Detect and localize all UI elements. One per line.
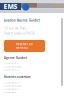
staticText: Ouvert jusqu a 18h30 bbox=[4, 32, 35, 35]
staticText: Lorem ipsum dolor bbox=[4, 92, 17, 93]
staticText: Location Agence Guichet bbox=[4, 19, 40, 22]
staticText: Lorem ipsum dolor sit bbox=[4, 82, 18, 84]
staticText: Lorem ipsum dolor sit bbox=[4, 88, 18, 90]
staticText: Lorem ipsum dolor sit bbox=[4, 62, 18, 64]
staticText: Lorem ipsum dolor sit bbox=[4, 69, 18, 71]
staticText: Lorem ipsum dolor sit amet bbox=[4, 66, 21, 68]
staticText: EMS bbox=[3, 2, 17, 11]
staticText: Agence Guichet bbox=[4, 56, 27, 60]
staticText: 12 rue de Paris bbox=[4, 27, 26, 30]
staticText: Horaires ouverture bbox=[4, 75, 31, 79]
button[interactable]: Reserver un creneau bbox=[4, 40, 45, 52]
staticText: Lorem ipsum dolor sit amet bbox=[4, 85, 21, 87]
staticText: Reserver un creneau bbox=[16, 42, 33, 50]
